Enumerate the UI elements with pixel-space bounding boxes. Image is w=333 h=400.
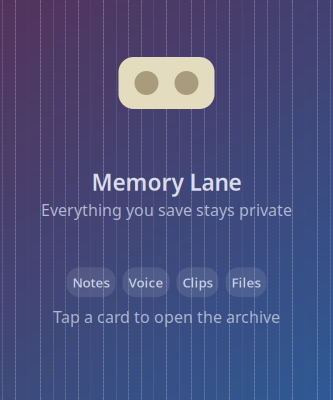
button[interactable]: Open library <box>118 57 214 109</box>
staticText: Files <box>231 273 260 291</box>
staticText: Voice <box>128 273 163 291</box>
staticText: Notes <box>72 273 109 291</box>
button[interactable]: Voice <box>122 267 169 297</box>
staticText: Tap a card to open the archive <box>53 306 280 327</box>
button[interactable]: Notes <box>66 267 115 297</box>
staticText: Clips <box>182 273 212 291</box>
button[interactable]: Clips <box>176 267 218 297</box>
staticText: Memory Lane <box>91 167 241 197</box>
button[interactable]: Files <box>225 267 266 297</box>
staticText: Everything you save stays private <box>41 199 292 220</box>
